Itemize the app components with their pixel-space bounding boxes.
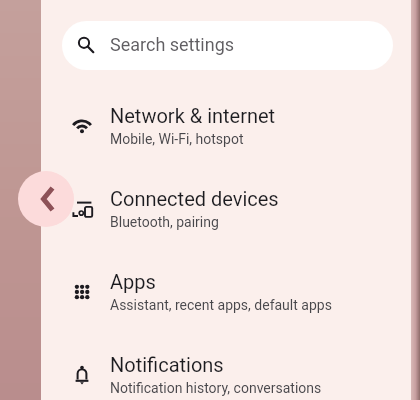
button[interactable]: Apps [41,250,411,333]
button[interactable]: Network & internet [41,84,411,167]
staticText: Notifications [110,353,224,376]
staticText: Mobile, Wi-Fi, hotspot [110,131,244,147]
staticText: Bluetooth, pairing [110,214,219,230]
staticText: Apps [110,270,156,293]
button[interactable]: Connected devices [41,167,411,250]
button[interactable]: Search settings [62,21,393,70]
staticText: Network & internet [110,104,276,127]
button[interactable]: Notifications [41,333,411,400]
staticText: Connected devices [110,187,279,210]
button[interactable] [18,171,74,227]
staticText: Notification history, conversations [110,380,322,396]
staticText: Search settings [110,34,235,55]
staticText: Assistant, recent apps, default apps [110,297,332,313]
